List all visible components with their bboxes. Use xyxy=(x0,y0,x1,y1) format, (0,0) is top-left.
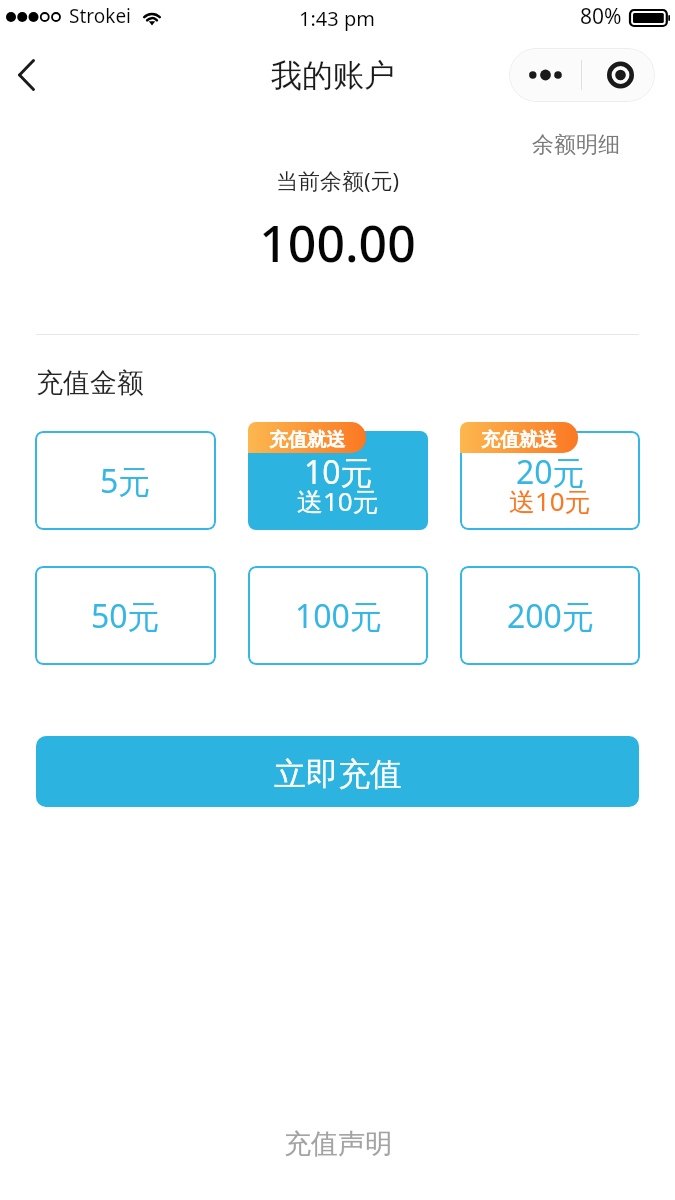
staticText: Strokei xyxy=(69,3,132,29)
button[interactable]: 200元 xyxy=(460,566,640,665)
staticText: 送10元 xyxy=(509,483,591,519)
button[interactable]: 5元 xyxy=(35,431,216,530)
staticText: 1:43 pm xyxy=(299,5,375,32)
staticText: 充值金额 xyxy=(36,366,144,400)
button[interactable]: Close xyxy=(582,48,655,102)
staticText: 充值就送 xyxy=(481,428,557,452)
staticText: 20元 xyxy=(516,450,585,494)
staticText: 10元 xyxy=(304,450,373,494)
button[interactable]: 立即充值 xyxy=(36,736,639,807)
staticText: 50元 xyxy=(91,594,160,638)
staticText: 充值声明 xyxy=(284,1127,392,1161)
staticText: 200元 xyxy=(507,594,594,638)
staticText: 立即充值 xyxy=(274,754,402,794)
button[interactable]: Back xyxy=(0,47,56,103)
staticText: 5元 xyxy=(100,459,151,503)
staticText: 100.00 xyxy=(0,209,675,277)
button[interactable]: More xyxy=(509,48,581,102)
staticText: 充值就送 xyxy=(269,428,345,452)
staticText: 当前余额(元) xyxy=(0,165,675,195)
button[interactable]: 100元 xyxy=(248,566,428,665)
staticText: 送10元 xyxy=(297,483,379,519)
staticText: 100元 xyxy=(295,594,382,638)
button[interactable]: 20元 xyxy=(460,431,640,530)
staticText: 余额明细 xyxy=(532,131,620,159)
button[interactable]: 50元 xyxy=(35,566,216,665)
button[interactable]: 余额明细 xyxy=(477,128,675,162)
staticText: 80% xyxy=(580,2,622,31)
button[interactable]: 充值声明 xyxy=(0,1117,675,1171)
staticText: 我的账户 xyxy=(271,56,395,95)
button[interactable]: 10元 xyxy=(248,431,428,530)
